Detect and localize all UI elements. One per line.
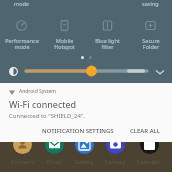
staticText: Mobile Hotspot (54, 37, 75, 51)
button[interactable]: Wi-Fi connected (0, 98, 172, 120)
button[interactable]: Secure Folder (129, 18, 172, 51)
staticText: Calendar (137, 158, 161, 165)
button[interactable]: Performance mode (0, 18, 43, 51)
button[interactable]: Camera (105, 135, 126, 165)
staticText: Blue light filter (95, 37, 120, 51)
staticText: Connected to "SHIELD_24". (9, 112, 85, 120)
button[interactable]: Calendar (137, 135, 161, 165)
staticText: saving (142, 0, 159, 7)
button[interactable]: Brightness (0, 63, 172, 79)
staticText: CLEAR ALL (130, 127, 160, 135)
staticText: Email (47, 158, 62, 165)
staticText: Gallery (75, 158, 94, 165)
other: Brightness (8, 66, 18, 76)
staticText: NOTIFICATION SETTINGS (42, 127, 114, 135)
button[interactable]: NOTIFICATION SETTINGS (38, 124, 118, 138)
staticText: mode (14, 0, 29, 7)
button[interactable]: Expand brightness settings (153, 65, 166, 78)
button[interactable]: Mobile Hotspot (43, 18, 86, 51)
staticText: Camera (105, 158, 126, 165)
button[interactable]: CLEAR ALL (126, 124, 164, 138)
button[interactable]: Email (45, 135, 64, 165)
staticText: Performance mode (5, 37, 39, 51)
button[interactable]: Gallery (75, 135, 94, 165)
button[interactable]: Contacts (11, 135, 34, 165)
staticText: Secure Folder (142, 37, 160, 51)
button[interactable]: Blue light filter (86, 18, 129, 51)
staticText: Android System (19, 88, 57, 95)
staticText: Contacts (11, 158, 34, 165)
staticText: Wi-Fi connected (9, 98, 77, 110)
